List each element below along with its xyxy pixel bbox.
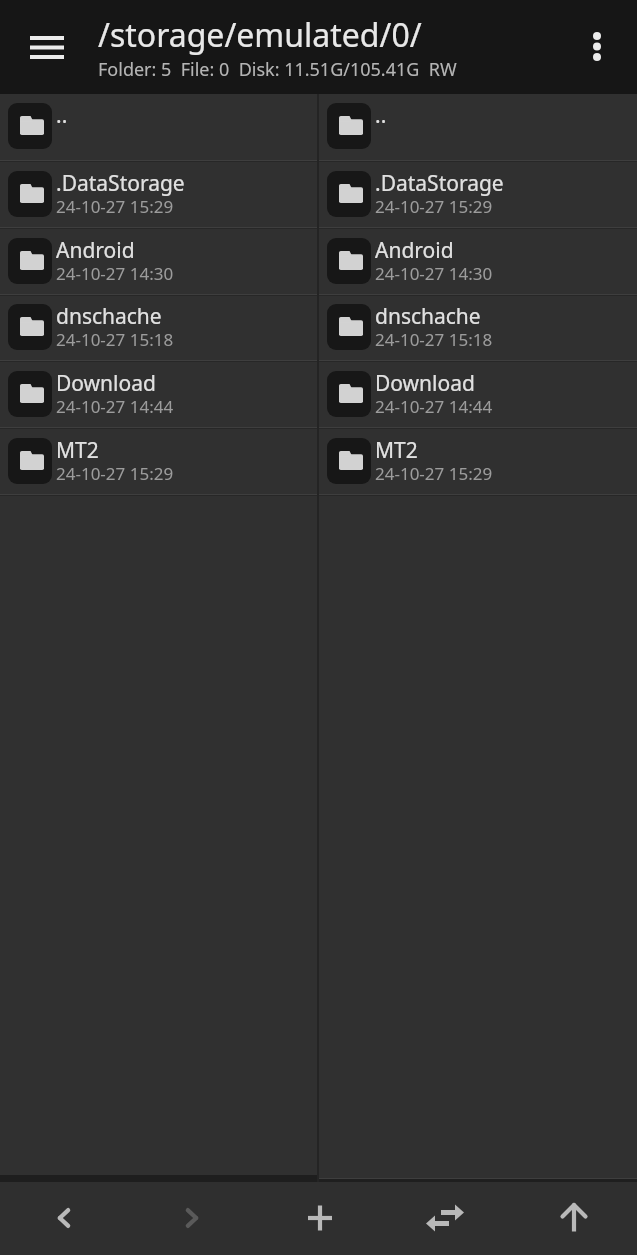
staticText: 24-10-27 15:18 xyxy=(375,328,493,351)
button[interactable]: .. xyxy=(319,94,637,160)
button[interactable]: Swap panes xyxy=(383,1182,510,1255)
staticText: Download xyxy=(56,369,156,398)
staticText: 24-10-27 14:44 xyxy=(375,395,493,418)
button[interactable]: MT2 xyxy=(319,429,637,494)
button[interactable]: .DataStorage xyxy=(319,162,637,227)
button[interactable]: More options xyxy=(571,0,623,94)
staticText: /storage/emulated/0/ xyxy=(98,13,422,57)
staticText: dnschache xyxy=(375,302,481,331)
staticText: .DataStorage xyxy=(375,169,504,198)
staticText: 24-10-27 15:29 xyxy=(56,195,174,218)
button[interactable]: Menu xyxy=(0,0,94,94)
staticText: Android xyxy=(375,236,454,265)
button[interactable]: dnschache xyxy=(0,296,317,360)
staticText: MT2 xyxy=(375,436,418,465)
staticText: Download xyxy=(375,369,475,398)
button[interactable]: Android xyxy=(319,229,637,294)
staticText: 24-10-27 15:18 xyxy=(56,328,174,351)
staticText: 24-10-27 14:30 xyxy=(56,262,174,285)
staticText: 24-10-27 15:29 xyxy=(56,462,174,485)
staticText: dnschache xyxy=(56,302,162,331)
button[interactable]: Forward xyxy=(128,1182,256,1255)
button[interactable]: Android xyxy=(0,229,317,294)
button[interactable]: .DataStorage xyxy=(0,162,317,227)
staticText: .DataStorage xyxy=(56,169,185,198)
button[interactable]: Up xyxy=(510,1182,637,1255)
staticText: 24-10-27 15:29 xyxy=(375,462,493,485)
button[interactable]: dnschache xyxy=(319,296,637,360)
button[interactable]: Download xyxy=(0,362,317,427)
button[interactable]: Download xyxy=(319,362,637,427)
staticText: 24-10-27 14:30 xyxy=(375,262,493,285)
staticText: Folder: 5 File: 0 Disk: 11.51G/105.41G R… xyxy=(98,57,457,82)
button[interactable]: MT2 xyxy=(0,429,317,494)
button[interactable]: .. xyxy=(0,94,317,160)
button[interactable]: Back xyxy=(0,1182,128,1255)
button[interactable]: New xyxy=(256,1182,383,1255)
staticText: .. xyxy=(56,101,68,130)
staticText: 24-10-27 14:44 xyxy=(56,395,174,418)
staticText: .. xyxy=(375,101,387,130)
staticText: 24-10-27 15:29 xyxy=(375,195,493,218)
staticText: Android xyxy=(56,236,135,265)
staticText: MT2 xyxy=(56,436,99,465)
